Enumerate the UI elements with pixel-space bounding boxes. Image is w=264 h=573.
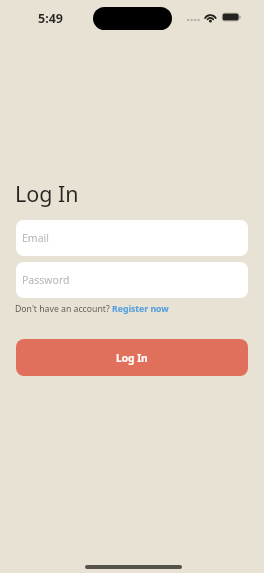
staticText: 5:49 — [38, 10, 63, 27]
staticText: Log In — [116, 351, 148, 365]
staticText: Password — [22, 273, 70, 287]
button[interactable]: Log In — [16, 339, 248, 376]
button[interactable]: Register now — [112, 303, 169, 315]
button[interactable]: Password — [16, 262, 248, 298]
staticText: Log In — [15, 179, 79, 208]
staticText: Register now — [112, 303, 169, 315]
staticText: Don't have an account? — [15, 303, 112, 315]
other: Battery — [221, 12, 242, 22]
other: Wi-Fi — [205, 13, 217, 22]
button[interactable]: Email — [16, 220, 248, 256]
staticText: Email — [22, 231, 49, 245]
other: Cellular signal — [187, 18, 199, 22]
